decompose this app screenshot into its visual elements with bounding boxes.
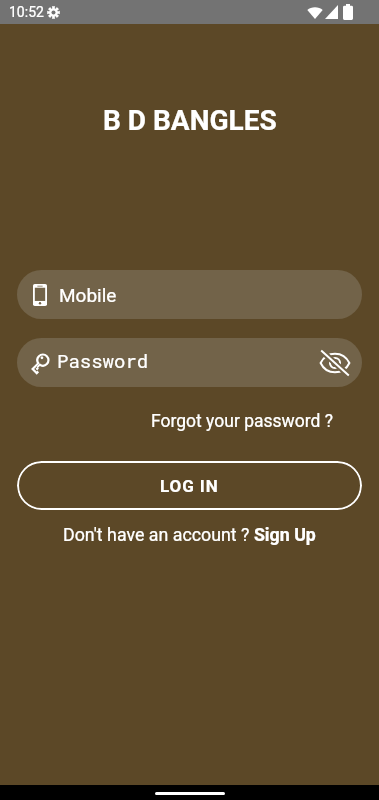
button[interactable]: LOG IN: [17, 461, 362, 510]
staticText: Don't have an account ? Sign Up: [63, 524, 316, 545]
staticText: Mobile: [59, 284, 117, 306]
staticText: B D BANGLES: [103, 104, 277, 137]
staticText: 10:52: [9, 4, 44, 20]
other: Show password: [320, 350, 350, 376]
other: Settings: [47, 6, 60, 19]
button[interactable]: Don't have an account ? Sign Up: [63, 524, 316, 545]
staticText: Password: [57, 348, 149, 373]
staticText: Forgot your password ?: [151, 411, 333, 432]
staticText: LOG IN: [160, 476, 219, 496]
button[interactable]: Mobile: [17, 270, 362, 319]
button[interactable]: Password: [17, 338, 362, 387]
button[interactable]: Forgot your password ?: [151, 411, 333, 432]
